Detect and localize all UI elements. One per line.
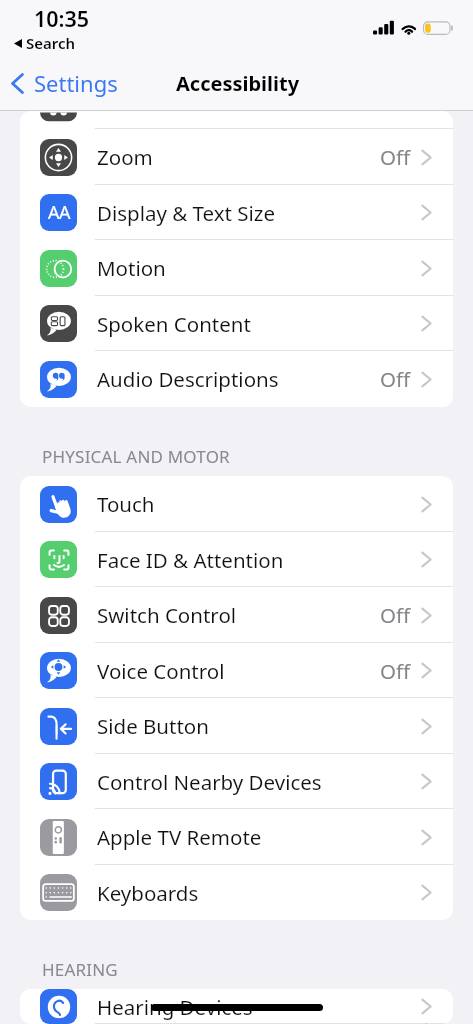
button[interactable] bbox=[20, 111, 453, 129]
button[interactable]: Voice Control bbox=[20, 643, 453, 698]
staticText: Off bbox=[380, 365, 411, 393]
staticText: Hearing Devices bbox=[97, 993, 253, 1021]
staticText: Off bbox=[380, 601, 411, 629]
staticText: Keyboards bbox=[97, 879, 199, 907]
staticText: Accessibility bbox=[176, 70, 300, 97]
staticText: Switch Control bbox=[97, 601, 237, 629]
staticText: Control Nearby Devices bbox=[97, 768, 322, 796]
staticText: PHYSICAL AND MOTOR bbox=[42, 445, 230, 468]
button[interactable]: Audio Descriptions bbox=[20, 351, 453, 407]
staticText: Face ID & Attention bbox=[97, 546, 284, 574]
staticText: Side Button bbox=[97, 712, 209, 740]
staticText: Apple TV Remote bbox=[97, 823, 262, 851]
staticText: Voice Control bbox=[97, 657, 225, 685]
button[interactable]: Control Nearby Devices bbox=[20, 754, 453, 809]
button[interactable]: Spoken Content bbox=[20, 296, 453, 351]
button[interactable]: AA bbox=[20, 185, 453, 240]
staticText: 10:35 bbox=[34, 4, 90, 33]
button[interactable]: Zoom bbox=[20, 129, 453, 185]
button[interactable]: Settings bbox=[0, 62, 126, 104]
staticText: Motion bbox=[97, 254, 166, 282]
button[interactable]: Motion bbox=[20, 240, 453, 296]
staticText: HEARING bbox=[42, 958, 118, 981]
button[interactable]: Side Button bbox=[20, 698, 453, 754]
button[interactable]: Apple TV Remote bbox=[20, 809, 453, 865]
button[interactable]: Face ID & Attention bbox=[20, 532, 453, 587]
staticText: Zoom bbox=[97, 143, 153, 171]
staticText: Search bbox=[26, 33, 76, 53]
button[interactable]: Keyboards bbox=[20, 865, 453, 920]
staticText: Spoken Content bbox=[97, 310, 251, 338]
staticText: Off bbox=[380, 143, 411, 171]
staticText: Off bbox=[380, 657, 411, 685]
staticText: Audio Descriptions bbox=[97, 365, 279, 393]
button[interactable]: Touch bbox=[20, 476, 453, 532]
staticText: Settings bbox=[34, 68, 118, 98]
staticText: Display & Text Size bbox=[97, 199, 276, 227]
button[interactable]: Hearing Devices bbox=[20, 989, 453, 1024]
staticText: Touch bbox=[97, 490, 155, 518]
staticText: AA bbox=[48, 200, 70, 225]
button[interactable]: Switch Control bbox=[20, 587, 453, 643]
